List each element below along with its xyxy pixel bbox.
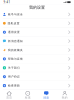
button[interactable]: 首页 <box>0 90 18 100</box>
staticText: 我的设置 <box>29 5 45 10</box>
staticText: 通用设置 <box>8 31 20 34</box>
staticText: 消息 <box>43 96 49 99</box>
button[interactable]: 我的 <box>55 90 74 100</box>
button[interactable]: 发现 <box>18 90 37 100</box>
button[interactable]: 我的收藏夹 <box>0 45 74 54</box>
staticText: 我的收藏夹 <box>8 48 23 52</box>
staticText: 我的 <box>62 96 68 99</box>
staticText: 帮助与反馈 <box>8 57 23 61</box>
staticText: 检查更新 <box>8 84 20 87</box>
staticText: 关于我们 <box>8 66 20 69</box>
staticText: 9:41 <box>3 0 10 4</box>
button[interactable]: 消息 <box>37 90 55 100</box>
button[interactable]: 用户协议 <box>0 72 74 81</box>
staticText: 隐私设置 <box>8 22 20 25</box>
button[interactable]: 账号与安全 <box>0 10 74 19</box>
button[interactable]: 通用设置 <box>0 28 74 37</box>
button[interactable]: 新消息通知 <box>0 37 74 45</box>
button[interactable]: 关于我们 <box>0 63 74 72</box>
staticText: 新消息通知 <box>8 39 23 43</box>
staticText: 发现 <box>25 96 31 99</box>
button[interactable]: 检查更新 <box>0 81 74 90</box>
staticText: 首页 <box>6 96 12 99</box>
staticText: 账号与安全 <box>8 13 23 16</box>
button[interactable]: 帮助与反馈 <box>0 54 74 63</box>
staticText: 用户协议 <box>8 75 20 78</box>
button[interactable]: 隐私设置 <box>0 19 74 28</box>
